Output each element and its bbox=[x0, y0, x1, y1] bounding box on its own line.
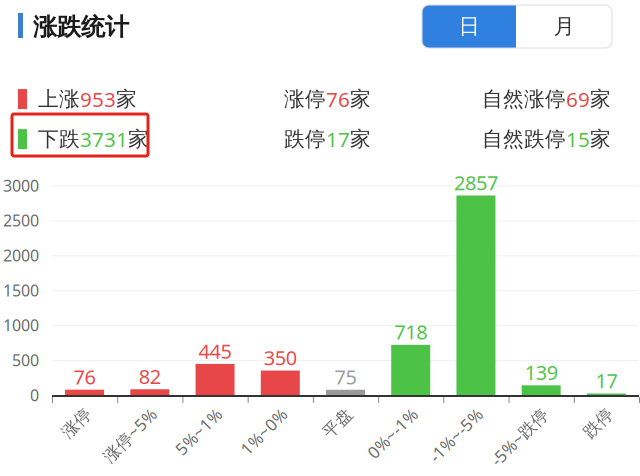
staticText: 月 bbox=[553, 13, 574, 40]
staticText: 3000 bbox=[3, 175, 39, 196]
staticText: 718 bbox=[394, 318, 427, 345]
staticText: 涨停 bbox=[55, 400, 89, 421]
staticText: 15 bbox=[566, 125, 590, 153]
staticText: 0 bbox=[30, 384, 39, 406]
staticText: 上涨 bbox=[38, 86, 80, 112]
staticText: 1000 bbox=[3, 314, 39, 336]
staticText: 2500 bbox=[3, 209, 39, 231]
staticText: 1%~0% bbox=[226, 400, 284, 422]
staticText: -1%~-5% bbox=[412, 400, 480, 422]
staticText: 76 bbox=[326, 85, 350, 113]
staticText: 下跌 bbox=[38, 126, 80, 152]
staticText: 自然跌停 bbox=[482, 126, 566, 152]
staticText: 家 bbox=[350, 86, 371, 112]
staticText: 跌停 bbox=[284, 126, 326, 152]
staticText: 家 bbox=[590, 126, 611, 152]
staticText: 5%~1% bbox=[161, 400, 219, 422]
staticText: 日 bbox=[458, 13, 479, 40]
staticText: 1500 bbox=[3, 279, 39, 301]
staticText: 76 bbox=[74, 363, 96, 390]
button[interactable]: 月 bbox=[516, 5, 612, 48]
staticText: -5%~跌停 bbox=[472, 400, 545, 422]
staticText: 涨停~5% bbox=[86, 400, 154, 422]
staticText: 82 bbox=[139, 363, 161, 390]
staticText: 500 bbox=[12, 349, 39, 371]
staticText: 17 bbox=[595, 367, 617, 394]
staticText: 自然涨停 bbox=[482, 86, 566, 112]
staticText: 75 bbox=[334, 363, 356, 390]
staticText: 3731 bbox=[80, 125, 128, 153]
staticText: 139 bbox=[525, 359, 558, 386]
button[interactable]: 日 bbox=[422, 5, 516, 48]
staticText: 69 bbox=[566, 85, 590, 113]
staticText: 家 bbox=[116, 86, 137, 112]
staticText: 家 bbox=[590, 86, 611, 112]
staticText: 2000 bbox=[3, 244, 39, 266]
staticText: 涨停 bbox=[284, 86, 326, 112]
staticText: 350 bbox=[264, 344, 297, 371]
staticText: 2857 bbox=[454, 169, 498, 196]
staticText: 家 bbox=[350, 126, 371, 152]
staticText: 0%~-1% bbox=[352, 400, 415, 422]
staticText: 平盘 bbox=[315, 400, 349, 421]
staticText: 跌停 bbox=[576, 400, 610, 421]
staticText: 17 bbox=[326, 125, 350, 153]
staticText: 445 bbox=[199, 337, 232, 364]
staticText: 953 bbox=[80, 85, 116, 113]
staticText: 家 bbox=[128, 126, 149, 152]
staticText: 涨跌统计 bbox=[33, 12, 129, 42]
